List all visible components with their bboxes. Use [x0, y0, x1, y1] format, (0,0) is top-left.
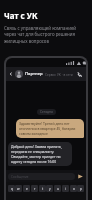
button[interactable]: Отправить	[77, 173, 84, 180]
button[interactable]: u	[54, 185, 61, 192]
button[interactable]: Назад	[8, 71, 14, 77]
button[interactable]: Сообщение	[8, 173, 75, 180]
staticText: Сообщение	[11, 175, 29, 179]
button[interactable]: Позвонить	[76, 71, 83, 78]
staticText: o	[73, 187, 75, 191]
staticText: q	[11, 187, 13, 191]
staticText: w	[17, 187, 20, 191]
button[interactable]: r	[31, 185, 38, 192]
staticText: Связь с управляющей компанией через чат …	[4, 25, 89, 45]
button[interactable]: p	[77, 185, 84, 192]
staticText: r	[34, 187, 36, 191]
button[interactable]: q	[8, 185, 15, 192]
staticText: Чат с УК	[4, 10, 38, 21]
staticText: t	[42, 187, 44, 191]
button[interactable]: o	[70, 185, 77, 192]
staticText: Партнер	[25, 71, 43, 77]
staticText: Добрый день! Заявка принята, передаем ее…	[11, 144, 69, 164]
staticText: y	[49, 187, 51, 191]
staticText: Сервис УК · в сети	[45, 73, 73, 77]
button[interactable]: e	[23, 185, 30, 192]
button[interactable]: i	[62, 185, 69, 192]
staticText: Здравствуйте! Третий день нет отопления …	[19, 121, 81, 136]
staticText: u	[57, 187, 59, 191]
button[interactable]: t	[39, 185, 46, 192]
button[interactable]: w	[15, 185, 22, 192]
staticText: e	[26, 187, 28, 191]
staticText: p	[80, 187, 82, 191]
staticText: Сегодня	[40, 110, 53, 114]
staticText: i	[65, 187, 66, 191]
button[interactable]: y	[46, 185, 53, 192]
